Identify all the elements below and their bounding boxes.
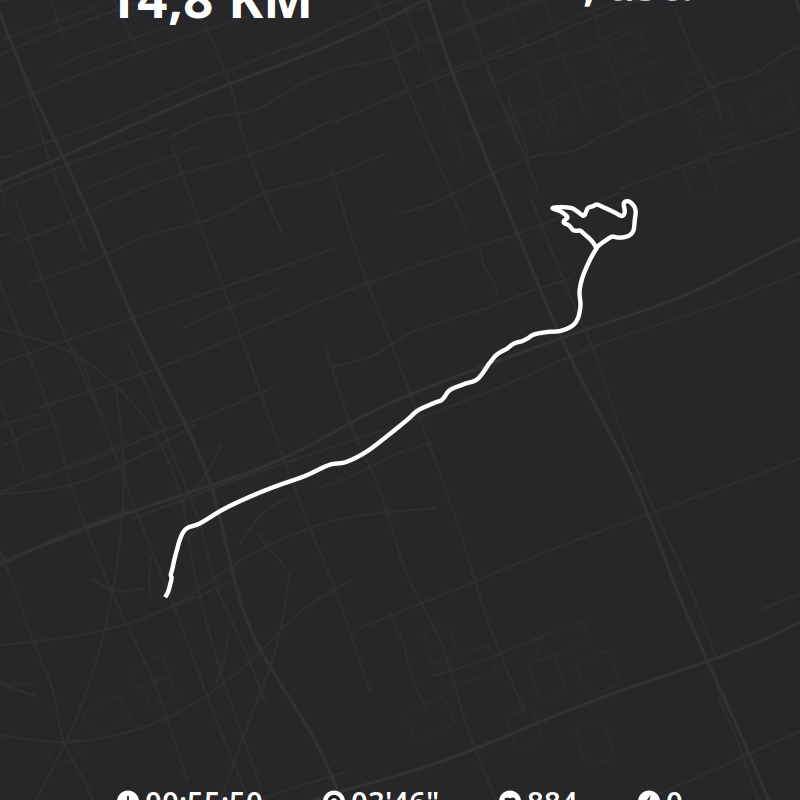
button[interactable]: 00:55:50 (117, 782, 263, 800)
button[interactable]: 14,8 KM (106, 0, 313, 33)
button[interactable]: 884 (499, 782, 578, 800)
staticText: 03'46" (351, 782, 439, 800)
staticText: 00:55:50 (145, 782, 263, 800)
button[interactable]: 0 (638, 782, 683, 800)
button[interactable]: 03'46" (323, 782, 439, 800)
staticText: 884 (527, 782, 578, 800)
button[interactable]: , asc. (583, 0, 694, 22)
staticText: 14,8 KM (106, 0, 313, 33)
staticText: 0 (666, 782, 683, 800)
staticText: , asc. (583, 0, 694, 13)
